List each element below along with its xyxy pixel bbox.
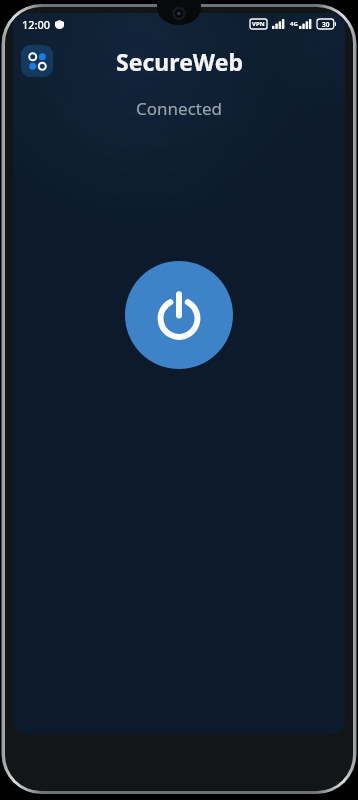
- staticText: SecureWeb: [116, 46, 243, 77]
- button[interactable]: Disconnect VPN: [125, 261, 233, 369]
- button[interactable]: Apps: [21, 45, 53, 77]
- staticText: VPN: [252, 20, 265, 28]
- staticText: 30: [322, 20, 330, 29]
- staticText: 4G: [290, 20, 298, 28]
- staticText: Connected: [13, 97, 345, 120]
- staticText: 12:00: [22, 17, 51, 32]
